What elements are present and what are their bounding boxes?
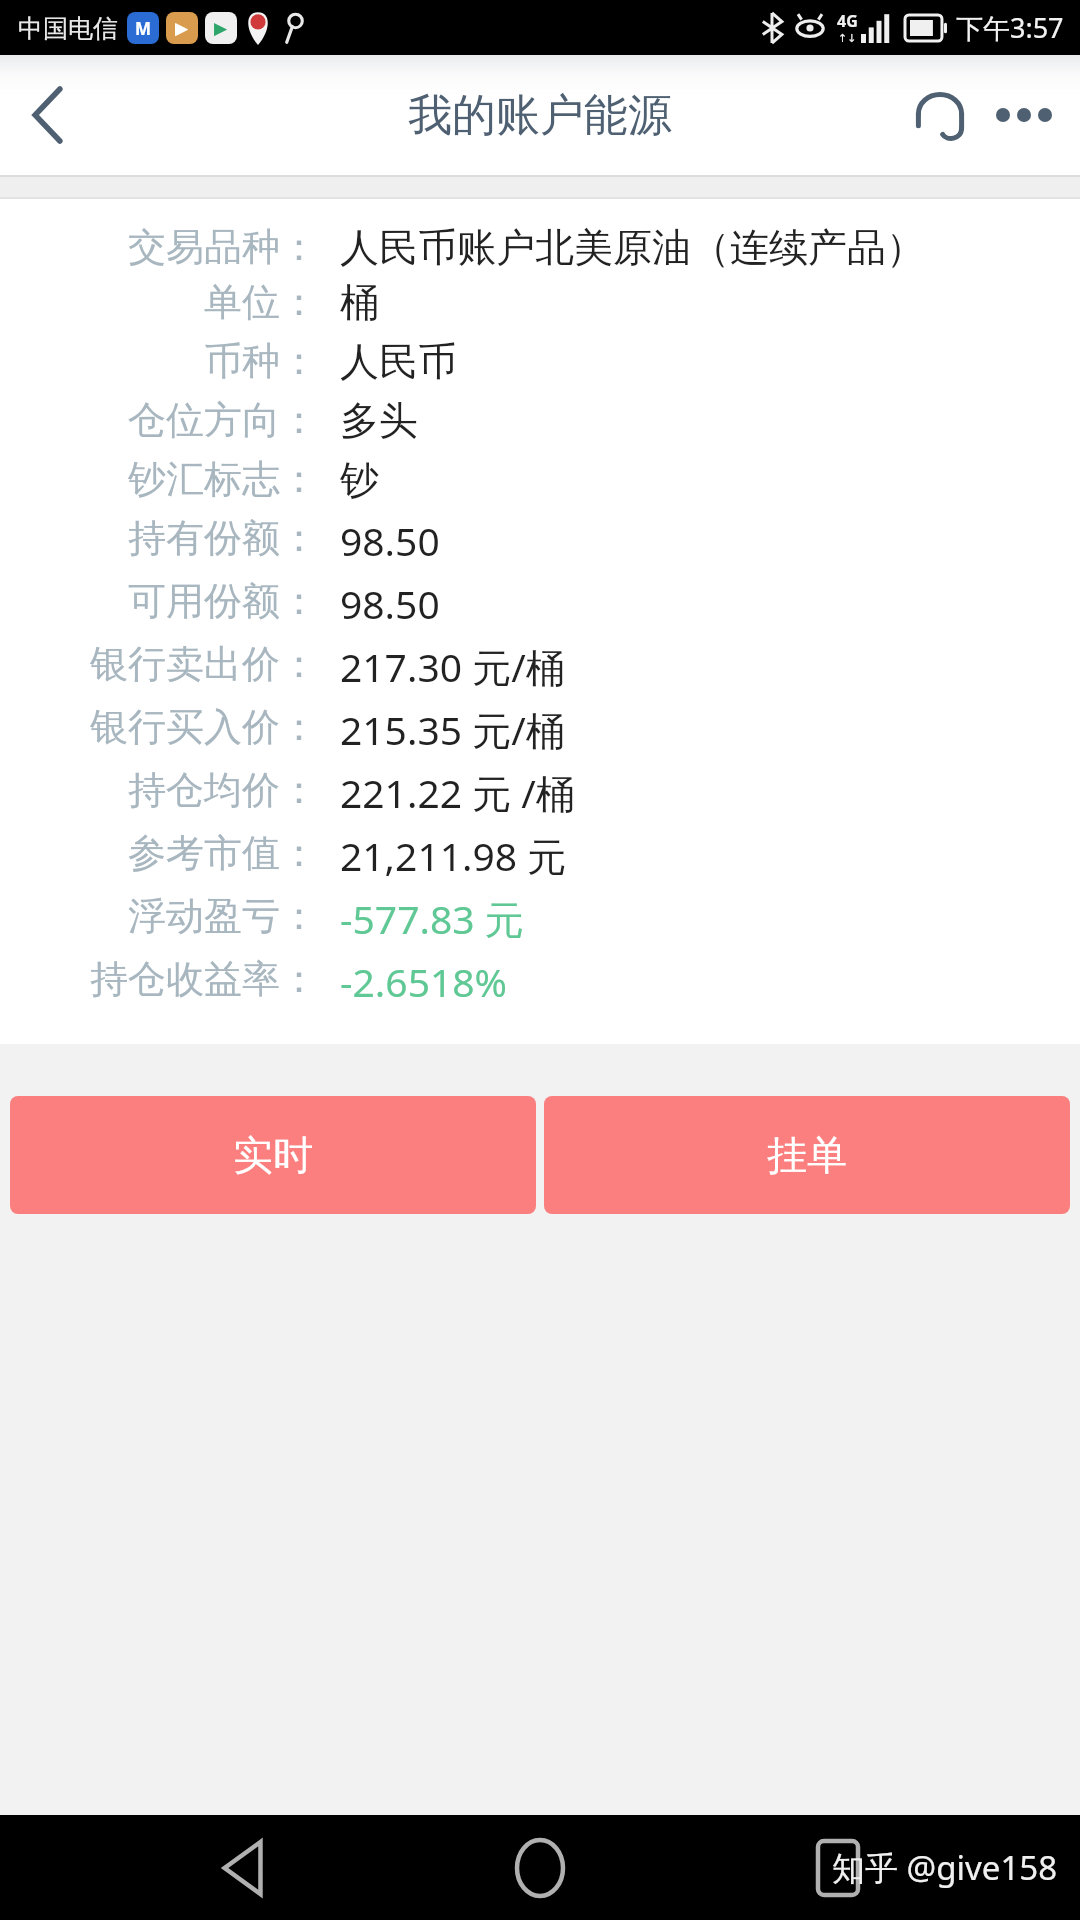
staticText: -577.83 元 <box>340 892 524 945</box>
staticText: 中国电信 <box>18 13 118 44</box>
staticText: 21,211.98 元 <box>340 829 567 882</box>
staticText: 4G <box>837 10 858 32</box>
staticText: 钞 <box>340 455 379 504</box>
button[interactable]: 返回 <box>188 1815 298 1920</box>
staticText: 可用份额： <box>128 577 318 625</box>
staticText: 实时 <box>233 1130 313 1180</box>
staticText: 单位： <box>204 278 318 326</box>
staticText: M <box>135 17 152 40</box>
button[interactable]: 挂单 <box>544 1096 1070 1214</box>
staticText: 挂单 <box>767 1130 847 1180</box>
staticText: 多头 <box>340 396 418 445</box>
staticText: 221.22 元 /桶 <box>340 766 575 819</box>
button[interactable]: 主屏幕 <box>485 1815 595 1920</box>
staticText: 217.30 元/桶 <box>340 640 565 693</box>
staticText: 银行卖出价： <box>90 640 318 688</box>
staticText: 知乎 @give158 <box>832 1845 1058 1890</box>
staticText: 98.50 <box>340 514 440 567</box>
staticText: 持有份额： <box>128 514 318 562</box>
button[interactable]: 更多 <box>982 73 1066 157</box>
staticText: -2.6518% <box>340 955 507 1008</box>
staticText: 人民币账户北美原油（连续产品） <box>340 223 925 272</box>
staticText: 钞汇标志： <box>128 455 318 503</box>
staticText: 我的账户能源 <box>408 88 672 143</box>
button[interactable]: 返回 <box>0 67 96 163</box>
staticText: 持仓收益率： <box>90 955 318 1003</box>
staticText: 215.35 元/桶 <box>340 703 565 756</box>
button[interactable]: 实时 <box>10 1096 536 1214</box>
staticText: 桶 <box>340 278 379 327</box>
staticText: 98.50 <box>340 577 440 630</box>
staticText: 人民币 <box>340 337 457 386</box>
button[interactable]: 最近任务 <box>783 1815 893 1920</box>
staticText: ▶ <box>175 18 189 38</box>
staticText: ▶ <box>214 18 228 38</box>
staticText: 浮动盈亏： <box>128 892 318 940</box>
staticText: 参考市值： <box>128 829 318 877</box>
staticText: 仓位方向： <box>128 396 318 444</box>
button[interactable]: 客服 <box>898 73 982 157</box>
staticText: ↑↓ <box>838 32 857 45</box>
staticText: 下午3:57 <box>956 9 1064 46</box>
staticText: 交易品种： <box>128 223 318 271</box>
staticText: 币种： <box>204 337 318 385</box>
staticText: 银行买入价： <box>90 703 318 751</box>
staticText: 持仓均价： <box>128 766 318 814</box>
